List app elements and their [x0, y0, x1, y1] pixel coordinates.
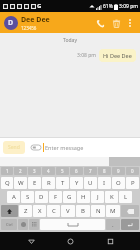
button[interactable]: D — [35, 191, 48, 203]
button[interactable]: Send — [3, 141, 25, 154]
staticText: Y — [75, 179, 79, 187]
button[interactable]: H — [77, 191, 90, 203]
button[interactable]: G — [63, 191, 76, 203]
staticText: W — [18, 179, 24, 187]
button[interactable]: Call — [92, 15, 108, 31]
staticText: 4 — [47, 168, 50, 174]
staticText: P — [131, 179, 135, 187]
staticText: Enter message — [45, 144, 84, 151]
button[interactable]: O — [112, 177, 125, 189]
button[interactable]: Z — [19, 205, 32, 217]
button[interactable]: N — [91, 205, 105, 217]
button[interactable]: 0 — [126, 167, 139, 175]
staticText: N — [96, 207, 101, 215]
staticText: I — [103, 179, 106, 187]
button[interactable]: J — [91, 191, 104, 203]
staticText: A — [12, 193, 16, 201]
staticText: X — [38, 207, 42, 215]
button[interactable]: Home — [61, 232, 79, 250]
button[interactable]: 3 — [28, 167, 41, 175]
staticText: C — [52, 207, 56, 215]
staticText: G — [67, 193, 72, 201]
button[interactable]: Shift — [1, 205, 18, 217]
button[interactable]: 5 — [56, 167, 69, 175]
staticText: J — [97, 193, 99, 201]
staticText: 2 — [19, 168, 22, 174]
button[interactable]: E — [28, 177, 41, 189]
button[interactable]: Back — [22, 232, 40, 250]
button[interactable]: D — [4, 16, 18, 30]
button[interactable]: Backspace — [121, 205, 139, 217]
staticText: R — [47, 179, 51, 187]
button[interactable]: More options — [124, 17, 136, 29]
staticText: D — [8, 18, 14, 28]
button[interactable]: K — [105, 191, 118, 203]
button[interactable]: 2 — [14, 167, 27, 175]
staticText: 3:09 pm — [119, 3, 138, 10]
staticText: 123456 — [21, 25, 37, 31]
button[interactable]: L — [119, 191, 132, 203]
button[interactable]: P — [126, 177, 139, 189]
staticText: 1 — [6, 168, 9, 174]
staticText: U — [88, 179, 93, 187]
button[interactable]: Q — [1, 177, 13, 189]
staticText: 7 — [89, 168, 92, 174]
button[interactable]: Space — [40, 219, 105, 230]
button[interactable]: Delete — [108, 15, 124, 31]
staticText: M — [110, 207, 116, 215]
staticText: G — [37, 2, 42, 10]
button[interactable]: 4 — [42, 167, 55, 175]
staticText: Ctrl — [6, 222, 13, 227]
button[interactable]: 8 — [98, 167, 111, 175]
staticText: O — [116, 179, 121, 187]
staticText: Today — [0, 37, 140, 44]
staticText: E — [33, 179, 37, 187]
button[interactable]: Ctrl — [1, 219, 17, 230]
staticText: B — [81, 207, 85, 215]
button[interactable]: 6 — [70, 167, 83, 175]
button[interactable]: S — [21, 191, 34, 203]
button[interactable]: C — [47, 205, 60, 217]
button[interactable]: Enter message — [45, 144, 137, 151]
staticText: Q — [5, 179, 10, 187]
button[interactable]: F — [49, 191, 62, 203]
button[interactable]: 9 — [112, 167, 125, 175]
staticText: 3:08 pm — [77, 52, 96, 59]
staticText: S — [26, 193, 30, 201]
button[interactable]: Attach — [30, 141, 42, 153]
staticText: 5 — [61, 168, 64, 174]
button[interactable]: 1 — [1, 167, 13, 175]
staticText: . — [112, 221, 114, 229]
staticText: Dee Dee — [21, 15, 50, 25]
staticText: V — [66, 207, 70, 215]
button[interactable]: W — [14, 177, 27, 189]
button[interactable]: Y — [70, 177, 83, 189]
staticText: K — [110, 193, 114, 201]
staticText: 9 — [117, 168, 120, 174]
button[interactable]: M — [106, 205, 120, 217]
button[interactable]: U — [84, 177, 97, 189]
button[interactable]: Enter — [121, 219, 139, 230]
staticText: Send — [8, 144, 20, 151]
button[interactable]: Recents — [101, 232, 119, 250]
button[interactable]: T — [56, 177, 69, 189]
button[interactable]: Keyboard settings — [29, 219, 39, 230]
staticText: Hi Dee Dee — [103, 52, 132, 59]
button[interactable]: A — [7, 191, 20, 203]
button[interactable]: X — [33, 205, 46, 217]
button[interactable]: V — [61, 205, 75, 217]
staticText: Z — [24, 207, 28, 215]
button[interactable]: 7 — [84, 167, 97, 175]
button[interactable]: I — [98, 177, 111, 189]
staticText: 8 — [103, 168, 106, 174]
staticText: F — [54, 193, 58, 201]
button[interactable]: B — [76, 205, 90, 217]
button[interactable]: R — [42, 177, 55, 189]
staticText: 6 — [75, 168, 78, 174]
button[interactable]: Hi Dee Dee — [99, 49, 136, 62]
staticText: 3 — [33, 168, 36, 174]
button[interactable]: Emoji — [18, 219, 28, 230]
